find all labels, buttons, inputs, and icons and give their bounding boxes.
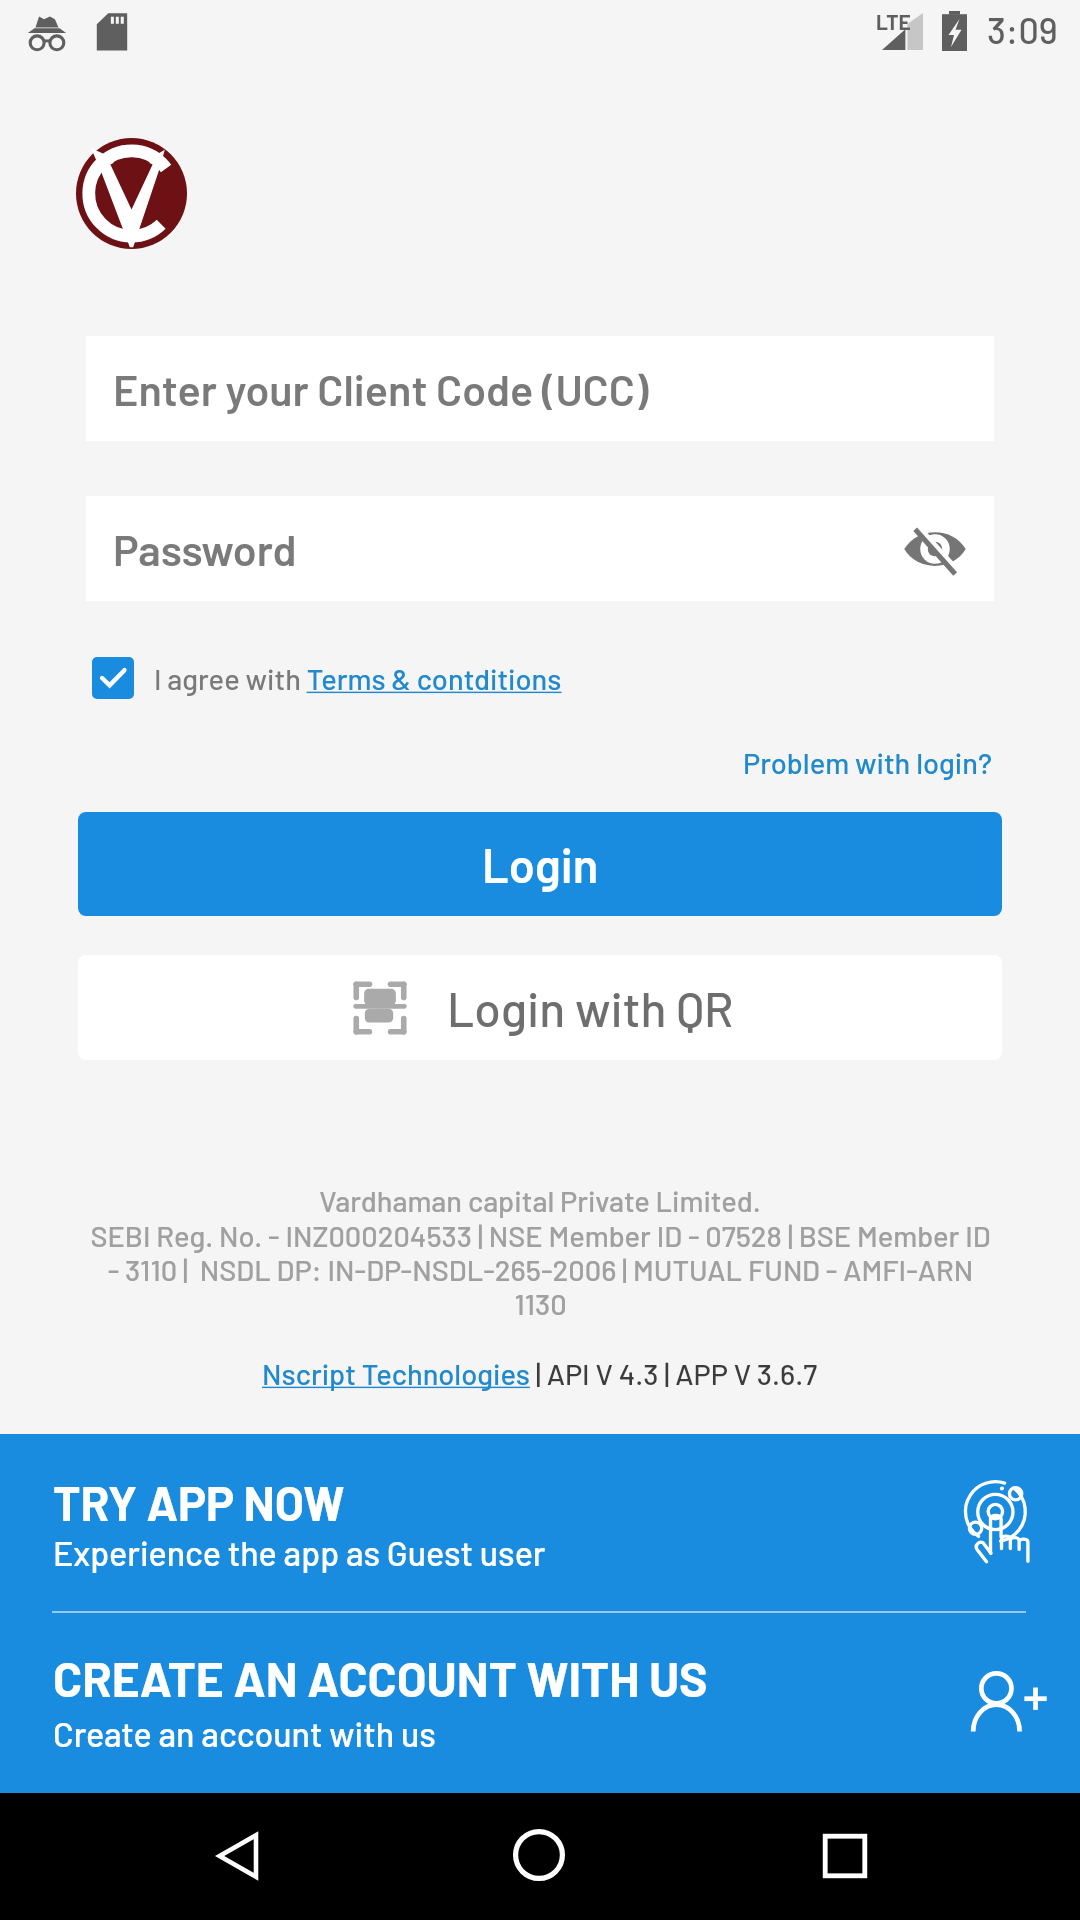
button[interactable]: Recents — [789, 1800, 901, 1912]
staticText: SEBI Reg. No. - INZ000204533 | NSE Membe… — [90, 1218, 991, 1321]
staticText: Vardhaman capital Private Limited. — [319, 1183, 761, 1218]
staticText: Create an account with us — [53, 1713, 436, 1754]
staticText: Password — [113, 523, 297, 575]
button[interactable]: TRY APP NOW — [0, 1434, 1080, 1611]
staticText: Login with QR — [447, 979, 734, 1037]
staticText: 3:09 — [987, 8, 1058, 51]
staticText: LTE — [876, 9, 911, 34]
button[interactable]: Problem with login? — [743, 745, 992, 780]
button[interactable]: CREATE AN ACCOUNT WITH US — [0, 1613, 1080, 1793]
staticText: Experience the app as Guest user — [53, 1532, 546, 1573]
button[interactable]: Password — [86, 496, 994, 601]
other: Try app now — [954, 1479, 1042, 1567]
staticText: Login — [482, 836, 599, 892]
button[interactable]: Enter your Client Code (UCC) — [86, 336, 994, 441]
button[interactable]: I agree with terms — [92, 657, 134, 699]
button[interactable]: Home — [483, 1799, 595, 1911]
button[interactable]: I agree with Terms & contditions — [154, 661, 562, 696]
button[interactable]: Show password — [900, 514, 970, 584]
button[interactable]: Nscript Technologies | API V 4.3 | APP V… — [262, 1356, 818, 1391]
button[interactable]: Login with QR — [78, 955, 1002, 1060]
staticText: Enter your Client Code (UCC) — [113, 363, 649, 415]
button[interactable]: Login — [78, 812, 1002, 916]
staticText: CREATE AN ACCOUNT WITH US — [53, 1649, 708, 1707]
button[interactable]: Back — [182, 1800, 294, 1912]
other: Create an account — [962, 1660, 1048, 1746]
staticText: TRY APP NOW — [53, 1474, 345, 1530]
